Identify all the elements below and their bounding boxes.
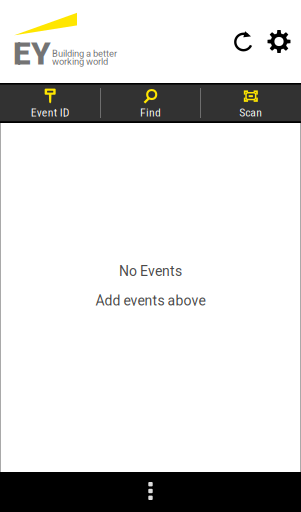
button[interactable]: Scan	[201, 83, 301, 123]
button[interactable]: Settings	[262, 24, 296, 58]
staticText: Find	[140, 106, 161, 119]
staticText: Scan	[239, 106, 262, 119]
button[interactable]: Event ID	[0, 83, 100, 123]
staticText: Building a better	[52, 48, 117, 59]
button[interactable]: Find	[100, 83, 201, 123]
staticText: Add events above	[95, 292, 205, 309]
staticText: working world	[52, 56, 108, 67]
staticText: Event ID	[31, 106, 70, 119]
button[interactable]: Refresh	[227, 25, 261, 59]
button[interactable]: More options	[129, 472, 171, 512]
staticText: No Events	[119, 263, 182, 279]
staticText: EY	[13, 35, 51, 72]
